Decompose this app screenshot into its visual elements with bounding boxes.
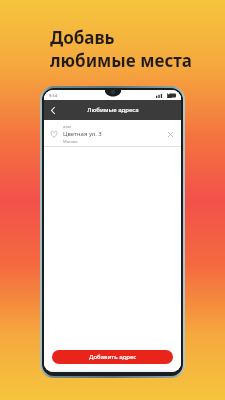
staticText: Цветная ул. 3 xyxy=(63,130,102,138)
staticText: Добавь xyxy=(50,26,115,49)
button[interactable]: Удалить xyxy=(165,129,175,139)
staticText: Добавить адрес xyxy=(89,353,137,361)
staticText: Москва xyxy=(63,139,78,144)
staticText: любимые места xyxy=(50,49,193,72)
staticText: 9:34 xyxy=(49,93,57,98)
button[interactable]: дом xyxy=(44,120,181,147)
staticText: Любимые адреса xyxy=(87,106,139,114)
button[interactable]: Добавить адрес xyxy=(52,350,173,364)
staticText: дом xyxy=(63,124,71,129)
button[interactable]: Назад xyxy=(44,101,62,119)
